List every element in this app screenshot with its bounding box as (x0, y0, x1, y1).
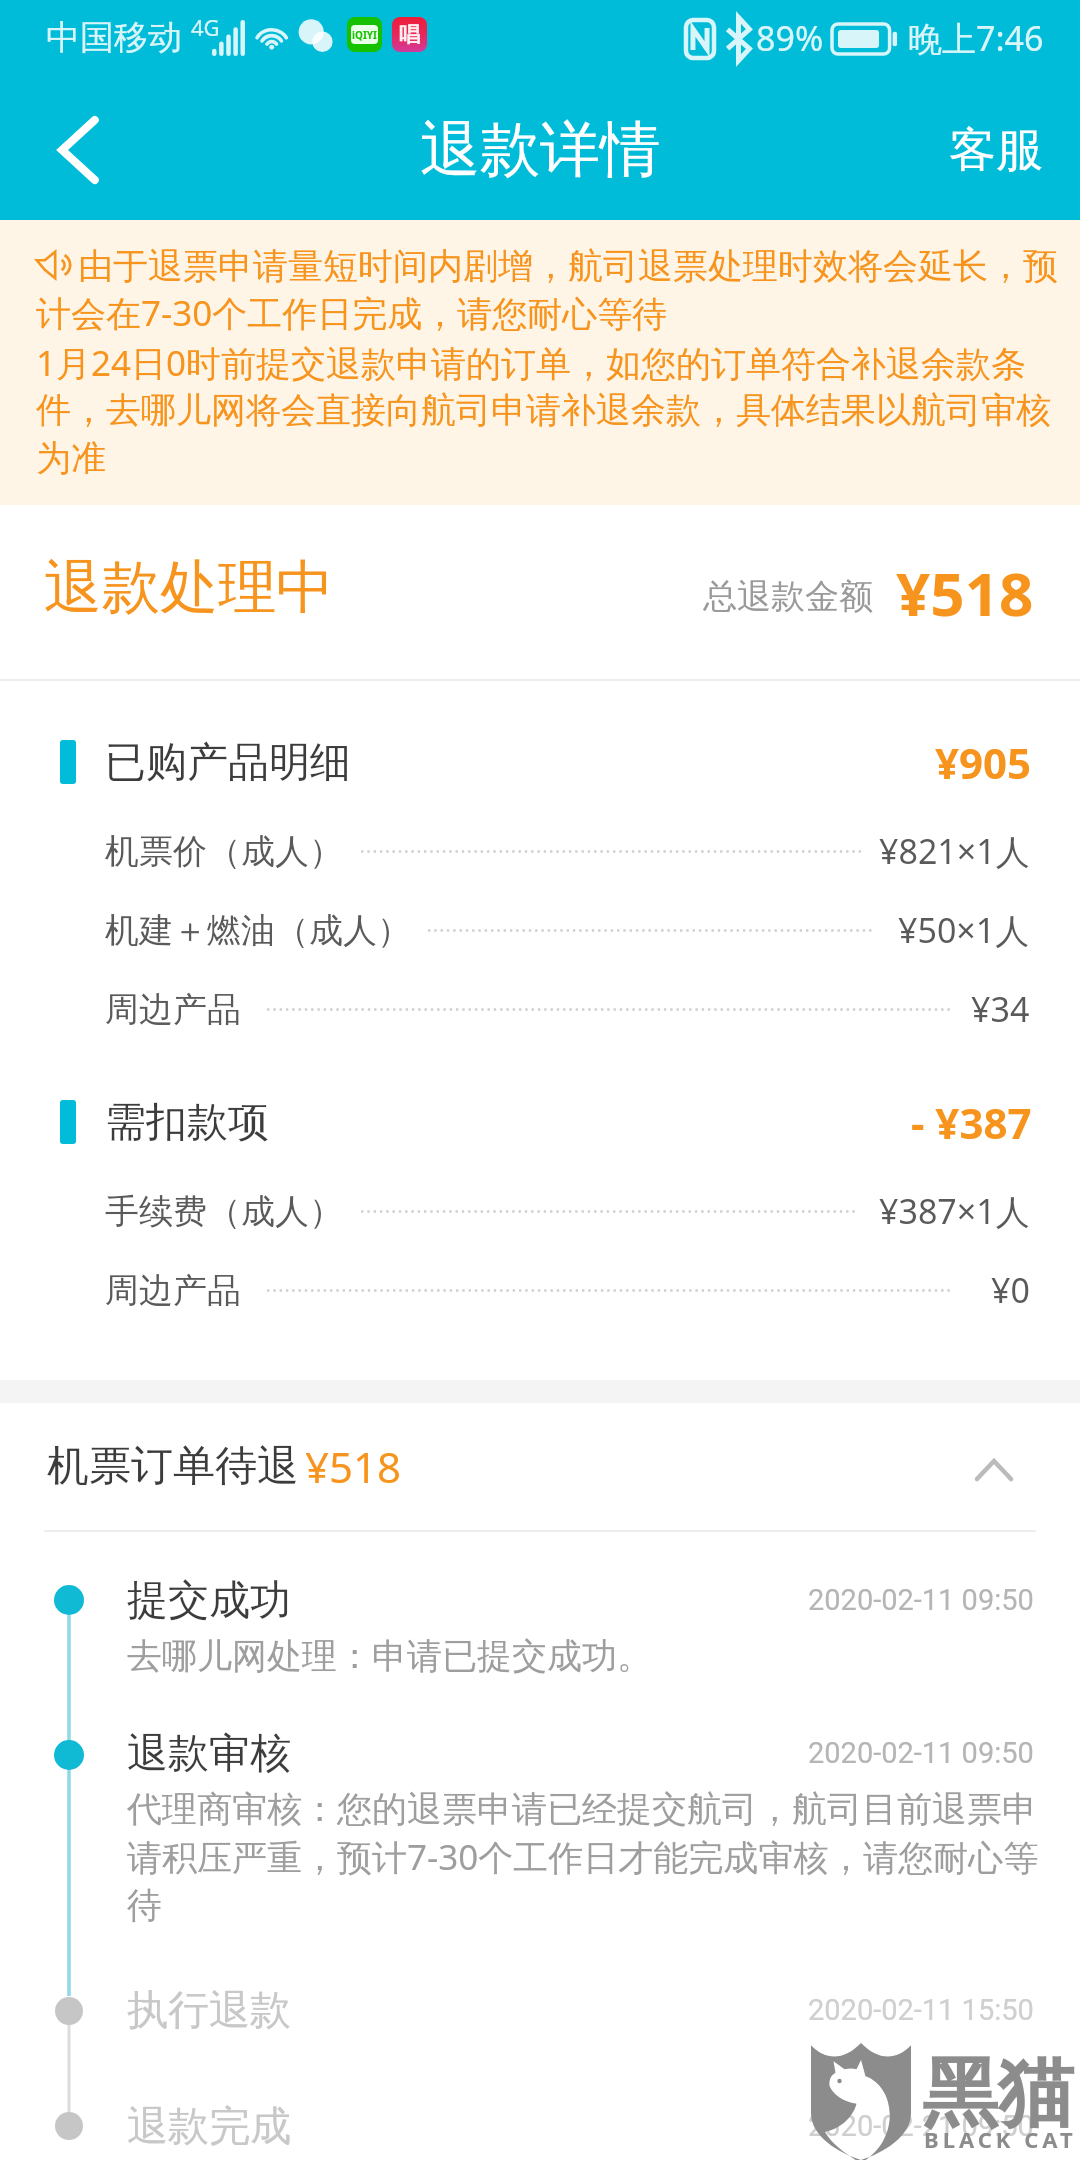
staticText: ¥518 (896, 552, 1034, 622)
staticText: 退款详情 (420, 112, 660, 188)
staticText: 退款完成 (127, 2101, 291, 2153)
staticText: 退款审核 (127, 1728, 291, 1780)
staticText: 已购产品明细 (105, 737, 351, 789)
staticText: 2020-02-21 09:50 (808, 2109, 1034, 2143)
staticText: 周边产品 (105, 1269, 241, 1312)
staticText: BLACK CAT (924, 2124, 1077, 2154)
button[interactable]: 客服 (900, 80, 1080, 220)
staticText: 中国移动 (46, 16, 182, 59)
staticText: ¥821×1人 (879, 828, 1030, 874)
staticText: 提交成功 (127, 1575, 291, 1627)
staticText: 总退款金额 (703, 575, 873, 618)
staticText: 机建＋燃油（成人） (105, 909, 411, 952)
staticText: ¥387×1人 (879, 1188, 1030, 1234)
staticText: ¥0 (991, 1267, 1030, 1313)
staticText: 机票价（成人） (105, 830, 343, 873)
staticText: 需扣款项 (105, 1097, 269, 1149)
staticText: 唱 (399, 22, 420, 48)
staticText: 客服 (949, 121, 1043, 180)
staticText: 去哪儿网处理：申请已提交成功。 (127, 1634, 652, 1678)
staticText: 件，去哪儿网将会直接向航司申请补退余款，具体结果以航司审核 (36, 388, 1051, 432)
staticText: 代理商审核：您的退票申请已经提交航司，航司目前退票申 (127, 1787, 1037, 1831)
staticText: 2020-02-11 15:50 (808, 1993, 1034, 2027)
staticText: ¥905 (935, 734, 1032, 791)
staticText: 2020-02-11 09:50 (808, 1583, 1034, 1617)
staticText: 计会在7-30个工作日完成，请您耐心等待 (36, 289, 668, 337)
staticText: 黑猫 (922, 2046, 1074, 2142)
staticText: ¥50×1人 (898, 907, 1030, 953)
staticText: 执行退款 (127, 1985, 291, 2037)
staticText: iQIYI (352, 28, 377, 42)
staticText: 晚上7:46 (908, 15, 1044, 61)
staticText: 请积压严重，预计7-30个工作日才能完成审核，请您耐心等 (127, 1833, 1039, 1881)
staticText: 为准 (36, 436, 106, 480)
staticText: 手续费（成人） (105, 1190, 343, 1233)
staticText: 周边产品 (105, 988, 241, 1031)
staticText: 退款处理中 (44, 551, 334, 624)
staticText: 1月24日0时前提交退款申请的订单，如您的订单符合补退余款条 (36, 339, 1027, 387)
staticText: 2020-02-11 09:50 (808, 1736, 1034, 1770)
button[interactable]: 机票订单待退 (0, 1403, 1080, 1530)
staticText: 待 (127, 1883, 162, 1927)
staticText: 由于退票申请量短时间内剧增，航司退票处理时效将会延长，预 (78, 244, 1058, 288)
staticText: ¥518 (305, 1438, 402, 1495)
staticText: - ¥387 (911, 1094, 1032, 1151)
staticText: 4G (191, 12, 220, 42)
staticText: 机票订单待退 (47, 1440, 299, 1493)
button[interactable]: Back (0, 80, 160, 220)
staticText: ¥34 (971, 986, 1030, 1032)
staticText: 89% (756, 15, 824, 61)
